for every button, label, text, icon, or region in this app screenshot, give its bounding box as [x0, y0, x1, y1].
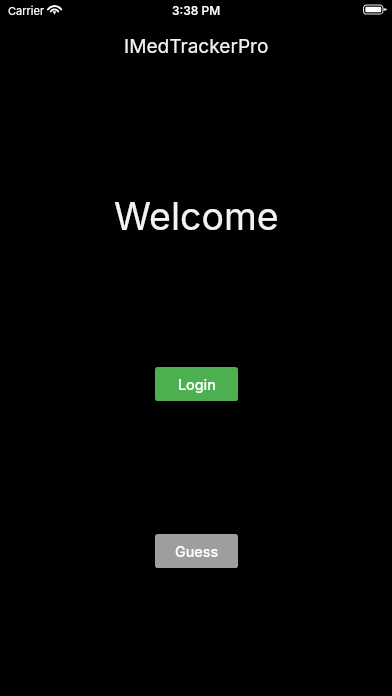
other: Wi-Fi signal [47, 4, 62, 14]
staticText: 3:38 PM [172, 3, 221, 18]
staticText: Guess [175, 543, 219, 560]
button[interactable]: Guess [155, 534, 238, 568]
staticText: Login [178, 376, 216, 393]
button[interactable]: Login [155, 367, 238, 401]
staticText: Carrier [8, 4, 45, 17]
staticText: Welcome [114, 194, 279, 239]
staticText: IMedTrackerPro [124, 34, 269, 57]
other: Battery full [363, 4, 387, 15]
